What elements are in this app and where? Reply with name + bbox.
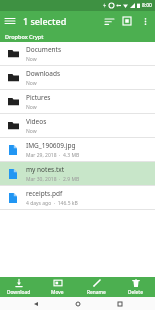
button[interactable]: Sort xyxy=(100,12,118,30)
button[interactable]: Back xyxy=(29,297,42,310)
button[interactable]: More options xyxy=(136,12,154,30)
button[interactable]: Rename xyxy=(77,277,116,297)
button[interactable]: Menu xyxy=(0,11,20,31)
staticText: Mar 29, 2018 · 4.3 MB xyxy=(26,152,80,159)
button[interactable]: Download xyxy=(0,277,38,297)
button[interactable]: Move xyxy=(38,277,77,297)
staticText: Now xyxy=(26,128,37,135)
button[interactable]: Dropbox Crypt xyxy=(0,31,155,42)
staticText: Mar 30, 2018 · 2.9 MB xyxy=(26,176,80,183)
button[interactable]: Documents xyxy=(0,42,155,65)
button[interactable]: IMG_190609.jpg xyxy=(0,138,155,161)
staticText: Now xyxy=(26,80,37,87)
staticText: Delete xyxy=(128,289,143,296)
staticText: Download xyxy=(7,289,31,296)
staticText: Downloads xyxy=(26,69,61,78)
button[interactable]: receipts.pdf xyxy=(0,186,155,209)
button[interactable]: Pictures xyxy=(0,90,155,113)
button[interactable]: Delete xyxy=(116,277,155,297)
staticText: Videos xyxy=(26,117,47,126)
staticText: Now xyxy=(26,104,37,111)
staticText: Now xyxy=(26,56,37,63)
button[interactable]: Downloads xyxy=(0,66,155,89)
button[interactable]: Home xyxy=(71,297,84,310)
staticText: Rename xyxy=(87,289,106,296)
button[interactable]: Videos xyxy=(0,114,155,137)
button[interactable]: Recents xyxy=(113,297,126,310)
staticText: my notes.txt xyxy=(26,165,65,174)
staticText: receipts.pdf xyxy=(26,189,63,198)
staticText: Dropbox Crypt xyxy=(5,33,44,40)
staticText: Documents xyxy=(26,45,62,54)
staticText: IMG_190609.jpg xyxy=(26,141,76,150)
staticText: 8:00 xyxy=(142,2,152,9)
button[interactable]: my notes.txt xyxy=(0,162,155,185)
staticText: 4 days ago · 146.5 kB xyxy=(26,200,78,207)
staticText: Move xyxy=(51,289,64,296)
staticText: Pictures xyxy=(26,93,51,102)
button[interactable]: Select all xyxy=(118,12,136,30)
staticText: 1 selected xyxy=(23,15,67,27)
